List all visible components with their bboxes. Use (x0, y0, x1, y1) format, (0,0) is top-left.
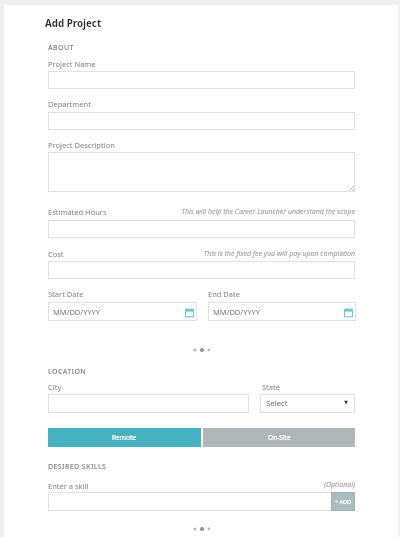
staticText: + ADD (335, 498, 352, 505)
button[interactable] (48, 152, 355, 192)
staticText: City (48, 382, 62, 392)
staticText: Cost (48, 249, 64, 259)
button[interactable]: + ADD (332, 493, 354, 510)
staticText: Department (48, 99, 91, 109)
button[interactable] (48, 71, 355, 89)
button[interactable] (48, 261, 355, 279)
button[interactable] (48, 394, 249, 413)
staticText: ABOUT (48, 42, 74, 52)
button[interactable] (48, 220, 355, 238)
staticText: Project Name (48, 59, 96, 69)
staticText: LOCATION (48, 366, 87, 376)
staticText: Enter a skill (48, 481, 89, 491)
staticText: Remote (112, 433, 137, 442)
staticText: Start Date (48, 289, 84, 299)
button[interactable]: MM/DD/YYYY (208, 302, 356, 321)
staticText: DESIRED SKILLS (48, 461, 107, 471)
staticText: State (262, 382, 280, 392)
button[interactable] (48, 492, 355, 511)
staticText: Add Project (45, 17, 102, 30)
staticText: End Date (208, 289, 240, 299)
button[interactable] (48, 112, 355, 130)
staticText: This will help the Career Launcher under… (180, 207, 355, 217)
button[interactable]: MM/DD/YYYY (48, 302, 197, 321)
staticText: MM/DD/YYYY (213, 307, 261, 317)
button[interactable]: Select (260, 394, 355, 413)
other: Pick a date (185, 308, 194, 317)
staticText: This is the fixed fee you will pay upon … (195, 249, 355, 259)
staticText: On-Site (268, 433, 291, 442)
staticText: Project Description (48, 140, 115, 150)
button[interactable]: On-Site (203, 428, 355, 447)
other: Pick a date (344, 308, 353, 317)
button[interactable]: Remote (48, 428, 201, 447)
staticText: MM/DD/YYYY (53, 307, 101, 317)
staticText: Select (266, 398, 288, 409)
staticText: (Optional) (290, 480, 355, 490)
staticText: Estimated Hours (48, 207, 107, 217)
